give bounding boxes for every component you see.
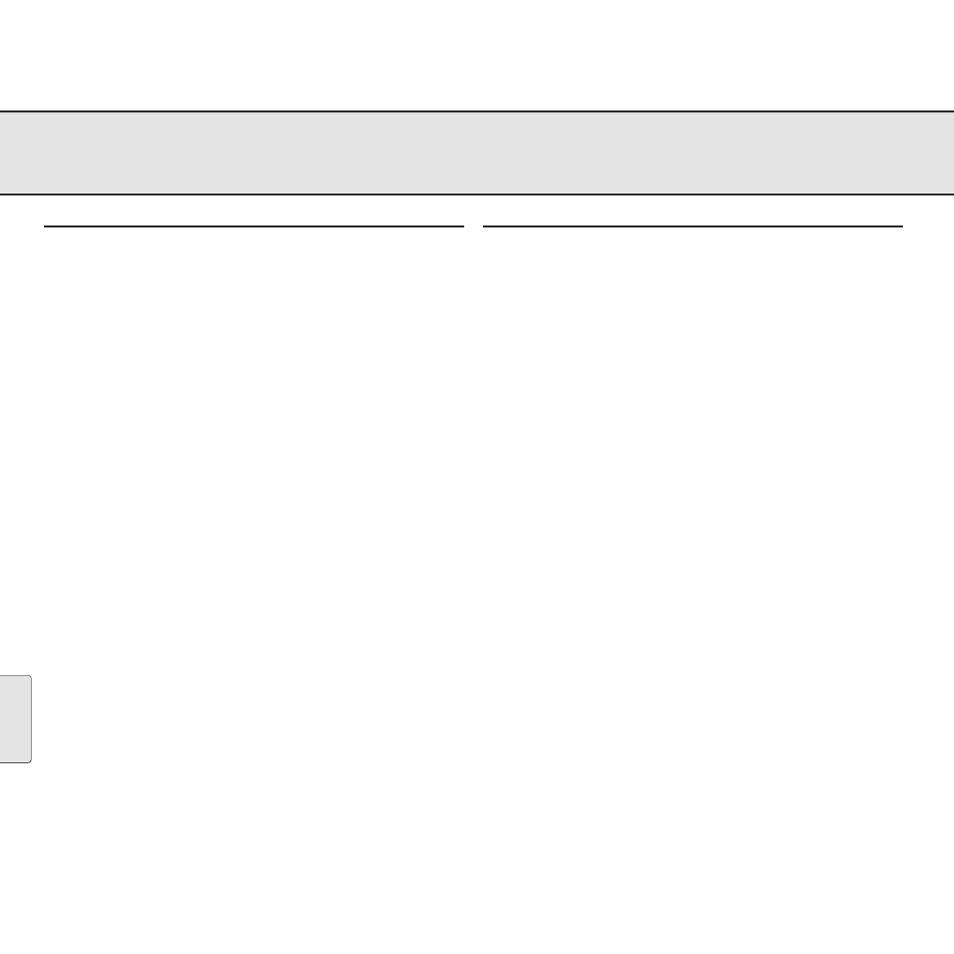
button[interactable]: Notes text area	[0, 110, 954, 196]
button[interactable]: Card	[0, 670, 40, 770]
button[interactable]: Last name	[482, 218, 904, 234]
button[interactable]: First name	[43, 218, 465, 234]
